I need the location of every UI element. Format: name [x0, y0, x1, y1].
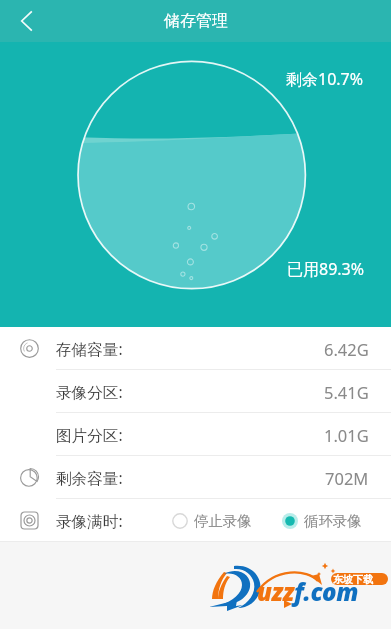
staticText: 存储容量: [56, 338, 123, 359]
staticText: 1.01G [324, 424, 369, 446]
button[interactable]: 循环录像 [282, 512, 362, 530]
staticText: 6.42G [324, 338, 369, 360]
staticText: 图片分区: [56, 424, 123, 445]
button[interactable]: 停止录像 [172, 512, 252, 530]
staticText: 储存管理 [164, 11, 228, 31]
staticText: 东坡下载 [333, 573, 373, 586]
staticText: 录像分区: [56, 381, 123, 402]
staticText: 停止录像 [194, 512, 252, 530]
staticText: 循环录像 [304, 512, 362, 530]
staticText: uzzf.com [257, 575, 359, 608]
staticText: 已用89.3% [287, 258, 365, 280]
staticText: 5.41G [324, 381, 369, 403]
button[interactable]: 图片分区: [0, 413, 391, 456]
button[interactable]: 录像分区: [0, 370, 391, 413]
staticText: 剩余容量: [56, 467, 123, 488]
staticText: 702M [325, 467, 369, 489]
button[interactable]: 存储容量: [0, 327, 391, 370]
staticText: 剩余10.7% [286, 68, 364, 90]
staticText: 录像满时: [56, 510, 123, 531]
button[interactable]: 剩余容量: [0, 456, 391, 499]
button[interactable]: Back [0, 0, 54, 42]
